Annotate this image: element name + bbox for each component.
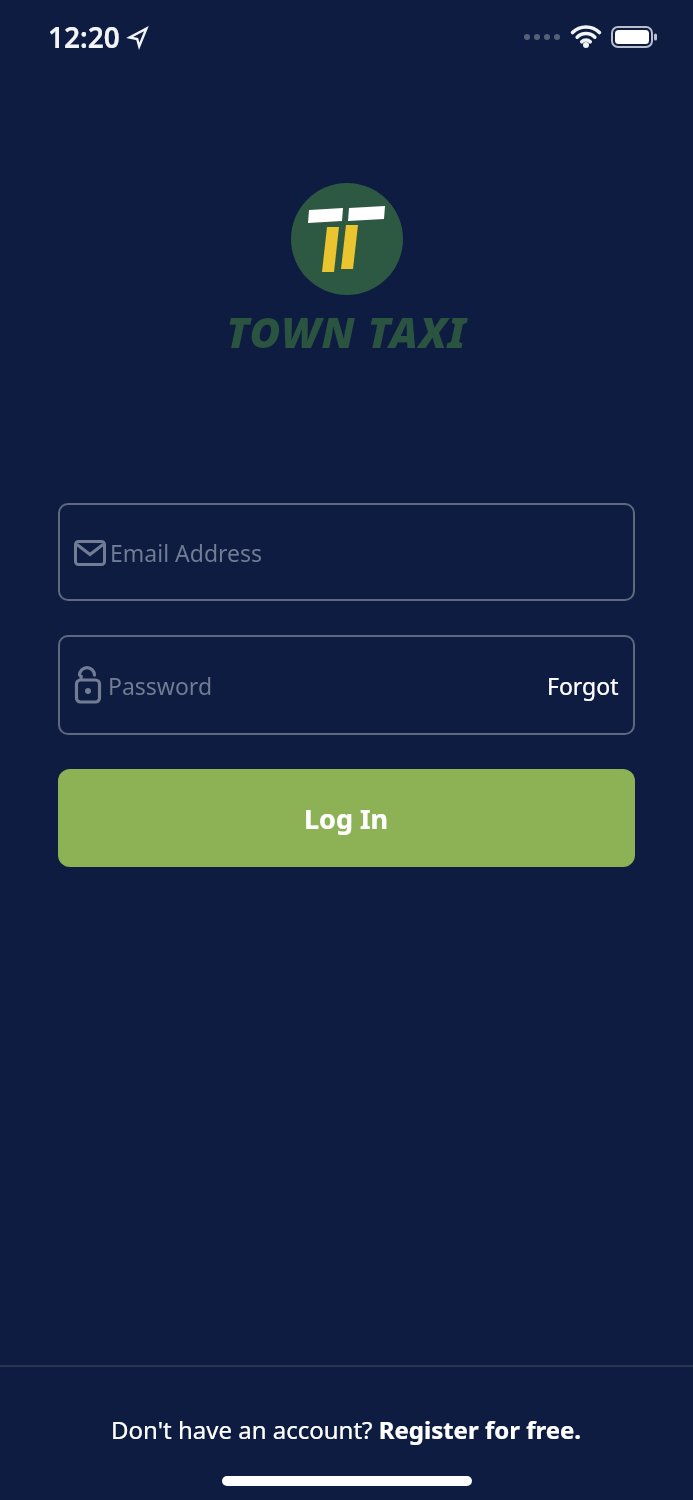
button[interactable]: Password — [58, 635, 635, 735]
staticText: Don't have an account? Register for free… — [111, 1413, 582, 1446]
button[interactable]: Email Address — [58, 503, 635, 601]
button[interactable]: Don't have an account? Register for free… — [0, 1413, 693, 1446]
staticText: 12:20 — [48, 18, 120, 56]
button[interactable]: Forgot — [547, 670, 619, 701]
staticText: Password — [108, 670, 213, 701]
staticText: Forgot — [547, 670, 619, 701]
staticText: Email Address — [110, 537, 263, 568]
staticText: Log In — [304, 800, 389, 837]
button[interactable]: Log In — [58, 769, 635, 867]
staticText: TOWN TAXI — [0, 303, 693, 360]
